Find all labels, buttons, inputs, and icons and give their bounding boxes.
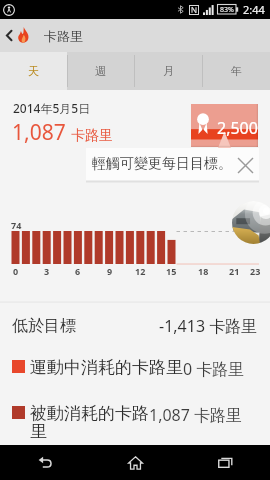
staticText: 83% (220, 5, 234, 15)
button[interactable]: 低於目標 (12, 315, 258, 337)
staticText: 74 (11, 219, 22, 231)
button[interactable]: 年 (202, 52, 270, 90)
button[interactable]: Daily goal 2,500 (191, 104, 258, 147)
button[interactable]: Back (0, 445, 90, 480)
button[interactable]: 運動中消耗的卡路里 (0, 357, 270, 379)
staticText: -1,413 卡路里 (159, 315, 258, 337)
staticText: 21 (229, 265, 240, 277)
staticText: 18 (198, 265, 209, 277)
staticText: 15 (166, 265, 177, 277)
staticText: 2:44 (243, 2, 265, 17)
staticText: 運動中消耗的卡路里 (30, 357, 183, 378)
button[interactable]: Recent apps (180, 445, 270, 480)
staticText: 1,087 卡路里 (149, 404, 243, 426)
button[interactable]: 週 (67, 52, 134, 90)
staticText: 2,500 (217, 117, 258, 139)
button[interactable]: Close (233, 153, 257, 177)
button[interactable]: 被動消耗的卡路 (0, 403, 270, 425)
staticText: 0 (13, 265, 19, 277)
staticText: 卡路里 (71, 127, 113, 145)
button[interactable]: 月 (134, 52, 202, 90)
button[interactable]: Back (0, 19, 17, 52)
button[interactable]: 天 (0, 52, 67, 90)
staticText: 低於目標 (12, 316, 76, 336)
staticText: 卡路里 (44, 28, 83, 44)
staticText: 1,087 (12, 118, 66, 147)
staticText: 12 (135, 265, 146, 277)
staticText: 里 (30, 421, 47, 442)
staticText: 6 (75, 265, 81, 277)
staticText: 週 (95, 64, 106, 78)
staticText: 9 (107, 265, 113, 277)
staticText: 年 (231, 64, 242, 78)
staticText: 2014年5月5日 (13, 100, 91, 116)
button[interactable]: Home (90, 445, 180, 480)
staticText: 月 (163, 64, 174, 78)
staticText: 3 (44, 265, 50, 277)
staticText: 23 (250, 265, 261, 277)
staticText: 輕觸可變更每日目標。 (92, 155, 232, 173)
staticText: 被動消耗的卡路 (30, 403, 149, 424)
staticText: 0 卡路里 (183, 358, 245, 380)
staticText: 天 (28, 64, 39, 78)
